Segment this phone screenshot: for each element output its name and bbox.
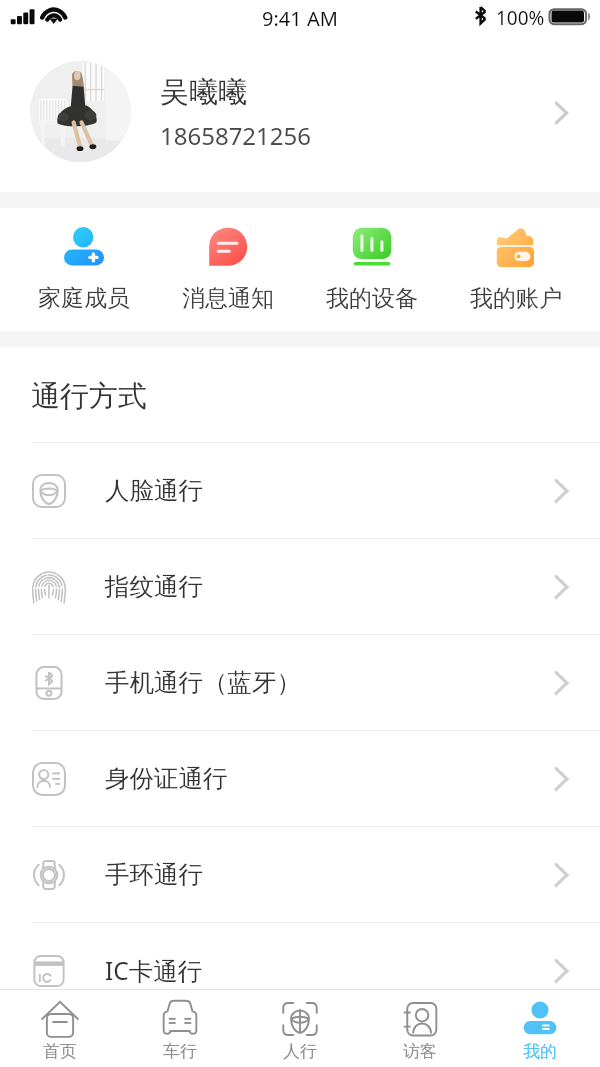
button[interactable]: 访客 [360, 990, 480, 1067]
staticText: 吴曦曦 [160, 74, 247, 111]
staticText: 手机通行（蓝牙） [105, 667, 546, 698]
button[interactable]: 车行 [120, 990, 240, 1067]
staticText: 家庭成员 [38, 284, 130, 313]
button[interactable]: 我的账户 [456, 223, 576, 317]
staticText: 指纹通行 [105, 571, 546, 602]
staticText: 人行 [283, 1041, 317, 1062]
staticText: 首页 [43, 1041, 77, 1062]
staticText: 100% [496, 5, 545, 31]
button[interactable]: 人行 [240, 990, 360, 1067]
button[interactable]: 我的 [480, 990, 600, 1067]
staticText: 手环通行 [105, 859, 546, 890]
staticText: IC卡通行 [105, 954, 546, 987]
staticText: 我的 [523, 1041, 557, 1062]
button[interactable]: 身份证通行 [0, 731, 600, 826]
button[interactable]: 消息通知 [168, 223, 288, 317]
other: Open profile details [546, 98, 576, 128]
staticText: 身份证通行 [105, 763, 546, 794]
staticText: 18658721256 [160, 119, 312, 152]
button[interactable]: IC卡通行 [0, 923, 600, 1018]
button[interactable]: 吴曦曦 [0, 40, 600, 192]
staticText: 我的账户 [470, 284, 562, 313]
staticText: 9:41 AM [262, 5, 338, 32]
button[interactable]: 指纹通行 [0, 539, 600, 634]
button[interactable]: 我的设备 [312, 223, 432, 317]
staticText: 车行 [163, 1041, 197, 1062]
button[interactable]: 手机通行（蓝牙） [0, 635, 600, 730]
staticText: 通行方式 [31, 378, 147, 415]
staticText: 消息通知 [182, 284, 274, 313]
button[interactable]: 手环通行 [0, 827, 600, 922]
staticText: 访客 [403, 1041, 437, 1062]
button[interactable]: 家庭成员 [24, 223, 144, 317]
staticText: 我的设备 [326, 284, 418, 313]
button[interactable]: 首页 [0, 990, 120, 1067]
button[interactable]: 人脸通行 [0, 443, 600, 538]
staticText: 人脸通行 [105, 475, 546, 506]
